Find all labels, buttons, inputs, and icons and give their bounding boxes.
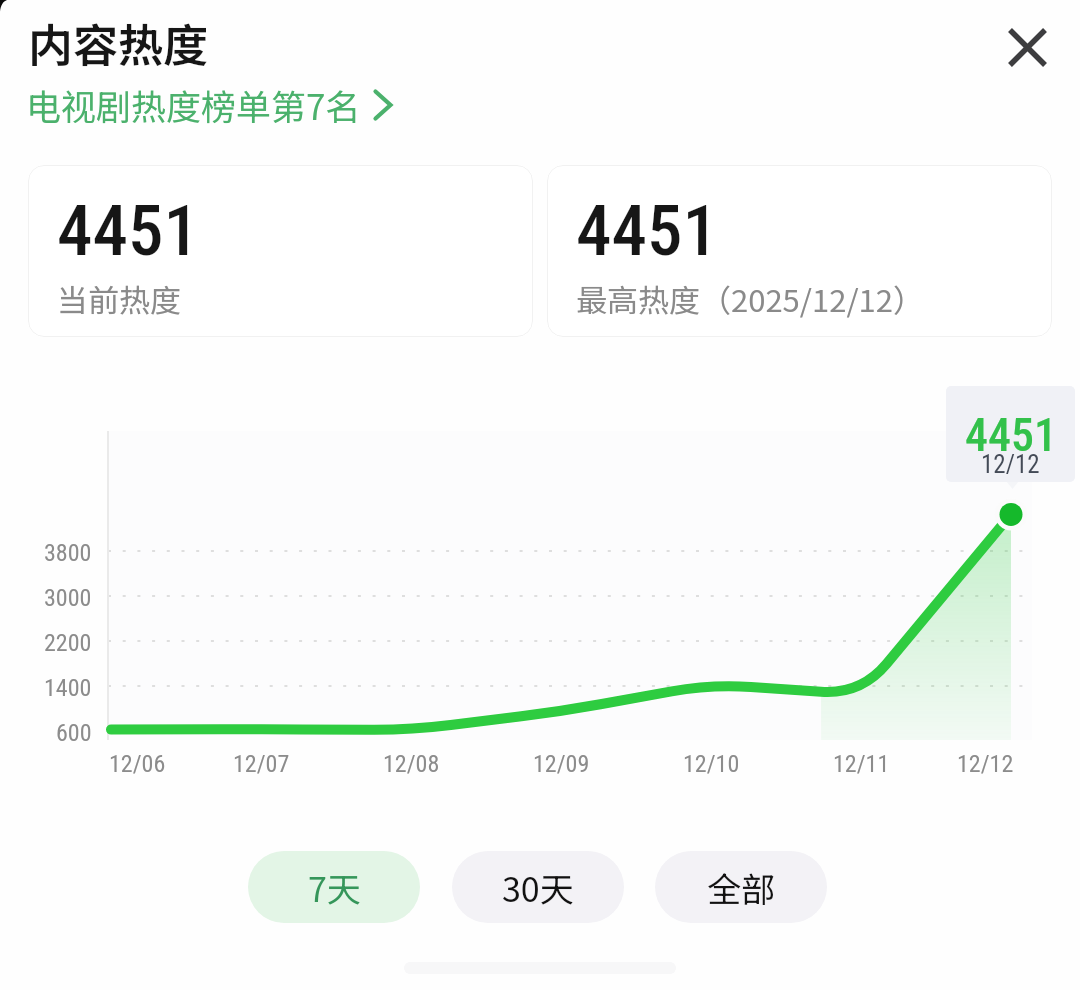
staticText: 12/12 xyxy=(981,450,1040,479)
staticText: 3800 xyxy=(44,539,92,567)
staticText: 3000 xyxy=(44,584,92,612)
staticText: 12/11 xyxy=(833,750,890,778)
staticText: 当前热度 xyxy=(57,276,181,321)
staticText: 内容热度 xyxy=(28,10,209,75)
button[interactable]: 7天 xyxy=(248,851,420,923)
staticText: 12/10 xyxy=(683,750,740,778)
staticText: 4451 xyxy=(57,189,199,272)
button[interactable]: 电视剧热度榜单第7名 xyxy=(26,79,392,130)
staticText: 30天 xyxy=(502,863,574,912)
staticText: 12/07 xyxy=(233,750,290,778)
staticText: 最高热度（2025/12/12） xyxy=(576,276,924,321)
staticText: 全部 xyxy=(707,863,775,912)
staticText: 4451 xyxy=(576,189,718,272)
staticText: 600 xyxy=(56,719,92,747)
button[interactable]: 全部 xyxy=(655,851,827,923)
button[interactable]: 30天 xyxy=(452,851,624,923)
staticText: 12/09 xyxy=(533,750,590,778)
staticText: 12/12 xyxy=(957,750,1014,778)
staticText: 4451 xyxy=(965,408,1057,462)
staticText: 7天 xyxy=(308,863,361,912)
button[interactable]: 4451 xyxy=(547,165,1052,337)
staticText: 12/06 xyxy=(109,750,166,778)
button[interactable]: Close xyxy=(991,11,1063,83)
staticText: 电视剧热度榜单第7名 xyxy=(26,79,361,130)
button[interactable]: 4451 xyxy=(28,165,533,337)
staticText: 1400 xyxy=(44,674,92,702)
staticText: 12/08 xyxy=(383,750,440,778)
staticText: 2200 xyxy=(44,629,92,657)
